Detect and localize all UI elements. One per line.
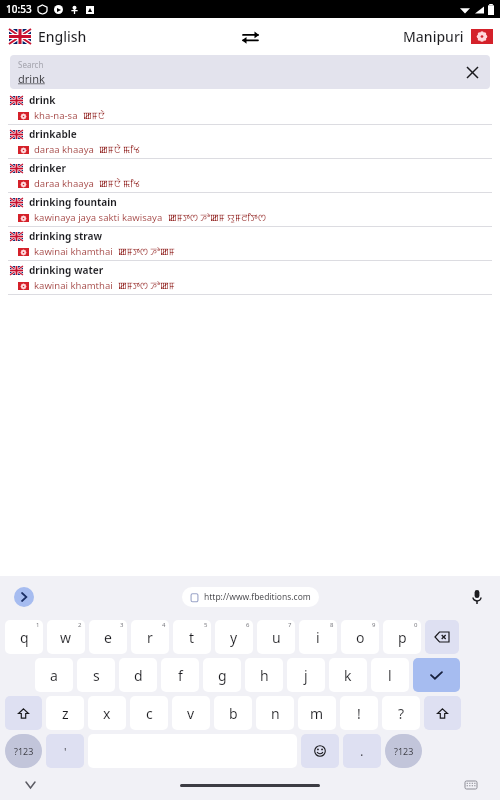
button[interactable]: u: [257, 620, 295, 654]
staticText: l: [388, 666, 392, 685]
button[interactable]: i: [299, 620, 337, 654]
button[interactable]: drinkable: [0, 125, 500, 158]
staticText: y: [230, 628, 238, 647]
button[interactable]: drinker: [0, 159, 500, 192]
button[interactable]: Search: [10, 55, 490, 89]
button[interactable]: Shift: [424, 696, 461, 730]
staticText: drinker: [29, 161, 66, 175]
staticText: ?: [398, 704, 405, 723]
staticText: 0: [414, 621, 418, 629]
button[interactable]: m: [298, 696, 336, 730]
button[interactable]: More suggestions: [14, 587, 34, 607]
staticText: n: [271, 704, 280, 723]
staticText: kha-na-sa: [34, 109, 78, 122]
staticText: 2: [78, 621, 82, 629]
staticText: 7: [288, 621, 292, 629]
button[interactable]: Emoji: [301, 734, 339, 768]
staticText: z: [62, 704, 69, 723]
button[interactable]: ?123: [385, 734, 422, 768]
staticText: j: [304, 666, 308, 685]
button[interactable]: j: [287, 658, 325, 692]
button[interactable]: w: [47, 620, 85, 654]
button[interactable]: !: [340, 696, 378, 730]
staticText: d: [134, 666, 143, 685]
staticText: m: [310, 704, 324, 723]
button[interactable]: o: [341, 620, 379, 654]
button[interactable]: h: [245, 658, 283, 692]
staticText: drink: [18, 71, 45, 86]
staticText: h: [260, 666, 269, 685]
button[interactable]: drinking water: [0, 261, 500, 294]
staticText: Manipuri: [403, 27, 464, 46]
staticText: !: [357, 704, 361, 723]
staticText: kawinaya jaya sakti kawisaya: [34, 211, 163, 224]
button[interactable]: drinking fountain: [0, 193, 500, 226]
staticText: daraa khaaya: [34, 143, 94, 156]
button[interactable]: z: [46, 696, 84, 730]
staticText: kawinai khamthai: [34, 279, 113, 292]
staticText: kawinai khamthai: [34, 245, 113, 258]
staticText: English: [38, 27, 87, 46]
staticText: a: [50, 666, 58, 685]
button[interactable]: drinking straw: [0, 227, 500, 260]
staticText: s: [93, 666, 100, 685]
staticText: ꯀꯝꯅꯥ ꯃꯤꯠ: [99, 177, 141, 190]
staticText: b: [229, 704, 238, 723]
button[interactable]: c: [130, 696, 168, 730]
staticText: w: [60, 628, 72, 647]
button[interactable]: http://www.fbeditions.com: [182, 587, 319, 607]
staticText: drinking fountain: [29, 195, 117, 209]
button[interactable]: Hide keyboard: [20, 775, 40, 795]
button[interactable]: Clear search: [462, 62, 482, 82]
button[interactable]: Backspace: [425, 620, 459, 654]
staticText: k: [344, 666, 352, 685]
button[interactable]: s: [77, 658, 115, 692]
staticText: v: [187, 704, 195, 723]
button[interactable]: ': [46, 734, 84, 768]
button[interactable]: ?: [382, 696, 420, 730]
button[interactable]: Swap languages: [235, 22, 265, 52]
button[interactable]: English: [9, 27, 87, 46]
button[interactable]: g: [203, 658, 241, 692]
staticText: g: [218, 666, 227, 685]
button[interactable]: Voice input: [466, 586, 488, 608]
button[interactable]: .: [343, 734, 381, 768]
staticText: ꯀꯝꯅꯥ ꯃꯤꯠ: [99, 143, 141, 156]
staticText: 6: [246, 621, 250, 629]
button[interactable]: Switch keyboard: [462, 776, 480, 794]
button[interactable]: k: [329, 658, 367, 692]
button[interactable]: l: [371, 658, 409, 692]
button[interactable]: Shift: [5, 696, 42, 730]
staticText: drinkable: [29, 127, 77, 141]
button[interactable]: x: [88, 696, 126, 730]
staticText: drinking straw: [29, 229, 103, 243]
button[interactable]: ?123: [5, 734, 42, 768]
button[interactable]: e: [89, 620, 127, 654]
staticText: 1: [36, 621, 40, 629]
button[interactable]: q: [5, 620, 43, 654]
button[interactable]: f: [161, 658, 199, 692]
staticText: daraa khaaya: [34, 177, 94, 190]
staticText: 10:53: [6, 2, 32, 16]
staticText: e: [104, 628, 112, 647]
button[interactable]: b: [214, 696, 252, 730]
button[interactable]: r: [131, 620, 169, 654]
staticText: q: [20, 628, 29, 647]
staticText: ': [64, 744, 67, 759]
button[interactable]: Enter: [413, 658, 460, 692]
button[interactable]: v: [172, 696, 210, 730]
button[interactable]: p: [383, 620, 421, 654]
button[interactable]: Manipuri: [403, 27, 493, 46]
button[interactable]: t: [173, 620, 211, 654]
button[interactable]: n: [256, 696, 294, 730]
staticText: t: [189, 628, 195, 647]
button[interactable]: y: [215, 620, 253, 654]
staticText: 9: [372, 621, 376, 629]
button[interactable]: d: [119, 658, 157, 692]
staticText: Search: [18, 59, 44, 70]
staticText: ꯀꯝꯅꯥ: [83, 109, 105, 122]
staticText: 3: [120, 621, 124, 629]
button[interactable]: drink: [0, 91, 500, 124]
button[interactable]: a: [35, 658, 73, 692]
